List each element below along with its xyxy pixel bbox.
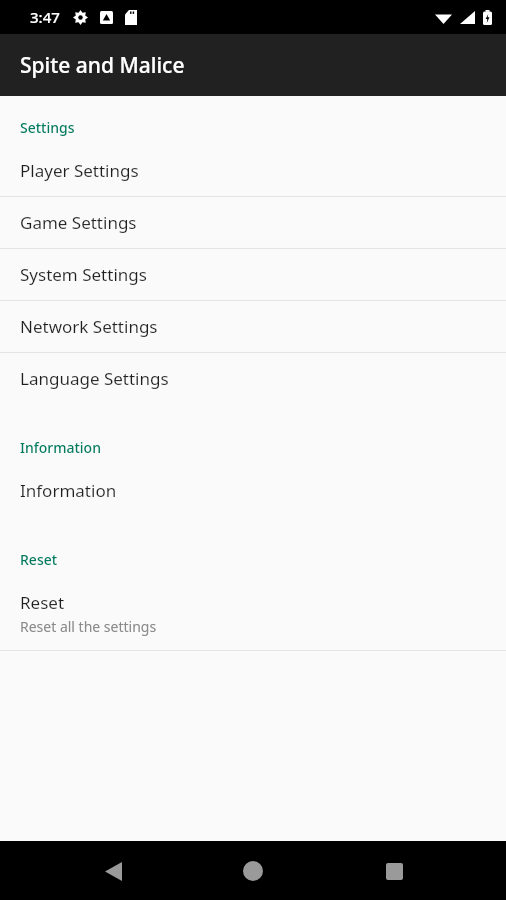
staticText: Player Settings: [20, 159, 139, 182]
staticText: Network Settings: [20, 315, 158, 338]
button[interactable]: Home: [225, 843, 281, 899]
staticText: 3:47: [30, 7, 60, 27]
staticText: Information: [20, 438, 101, 457]
staticText: Reset: [20, 550, 58, 569]
staticText: Information: [20, 479, 117, 502]
button[interactable]: Language Settings: [0, 353, 506, 404]
staticText: Settings: [20, 118, 75, 137]
button[interactable]: Recent apps: [366, 843, 422, 899]
staticText: Reset all the settings: [20, 617, 157, 636]
staticText: System Settings: [20, 263, 147, 286]
button[interactable]: Network Settings: [0, 301, 506, 352]
button[interactable]: Back: [85, 843, 141, 899]
button[interactable]: Game Settings: [0, 197, 506, 248]
staticText: Language Settings: [20, 367, 169, 390]
button[interactable]: Information: [0, 465, 506, 516]
button[interactable]: Reset: [0, 577, 506, 650]
staticText: Reset: [20, 591, 65, 614]
button[interactable]: System Settings: [0, 249, 506, 300]
staticText: Spite and Malice: [20, 51, 185, 80]
staticText: Game Settings: [20, 211, 137, 234]
button[interactable]: Player Settings: [0, 145, 506, 196]
